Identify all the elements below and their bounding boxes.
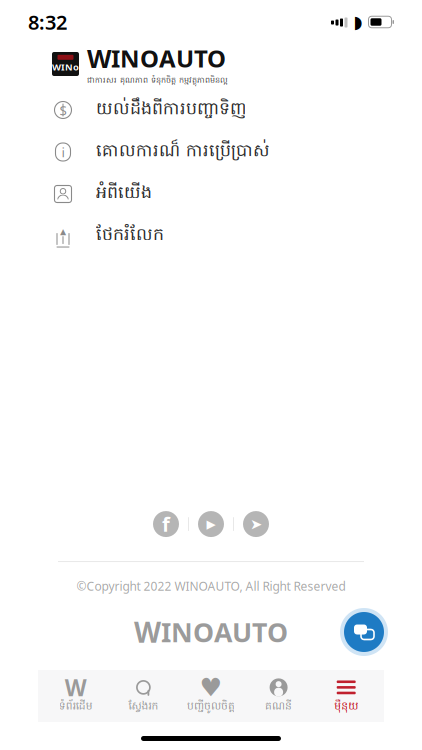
button[interactable]: Telegram	[243, 511, 269, 537]
button[interactable]: គណនី	[245, 674, 312, 718]
staticText: S	[59, 101, 66, 119]
staticText: ♥	[199, 673, 222, 702]
button[interactable]: ស្វែងរក	[110, 674, 177, 718]
staticText: ថែករំលែក	[96, 224, 164, 248]
button[interactable]: S	[30, 90, 392, 130]
staticText: ម៉ឺនុយ	[334, 699, 358, 715]
staticText: ▲	[60, 227, 66, 236]
staticText: W	[87, 41, 111, 75]
staticText: WINo	[52, 61, 79, 73]
staticText: i	[61, 143, 64, 161]
staticText: 8:32	[28, 9, 67, 35]
button[interactable]: YouTube	[198, 511, 224, 537]
staticText: អំពីយើង	[96, 182, 152, 206]
staticText: ©Copyright 2022 WINOAUTO, All Right Rese…	[76, 578, 345, 594]
button[interactable]: ♥	[177, 674, 245, 718]
staticText: យល់ដឹងពីការបញ្ចាទិញ	[96, 98, 247, 122]
staticText: f	[162, 511, 170, 537]
staticText: គណនី	[265, 699, 292, 715]
staticText: ទំព័រដើម	[59, 699, 93, 715]
staticText: បញ្ជីចូលចិត្ត	[187, 699, 235, 715]
button[interactable]: ▲	[30, 216, 392, 256]
staticText: ➤	[250, 516, 262, 532]
button[interactable]: W	[42, 674, 110, 718]
staticText: INOAUTO	[161, 614, 288, 650]
button[interactable]: i	[30, 132, 392, 172]
staticText: ▶	[206, 517, 215, 531]
staticText: W	[134, 613, 161, 651]
button[interactable]: Facebook	[153, 511, 179, 537]
button[interactable]: ម៉ឺនុយ	[312, 674, 380, 718]
button[interactable]: Chat	[340, 608, 388, 656]
staticText: ស្វែងរក	[128, 699, 158, 715]
staticText: INOAUTO	[111, 42, 226, 74]
staticText: ជាការសរ គុណភាព ទំនុកចិត្ត កម្មវត្ថុភាពមិ…	[87, 75, 228, 86]
staticText: គោលការណ៏ ការប្រើប្រាស់	[96, 140, 270, 164]
button[interactable]: អំពីយើង	[30, 174, 392, 214]
staticText: ◗	[353, 12, 362, 32]
staticText: W	[65, 672, 87, 702]
